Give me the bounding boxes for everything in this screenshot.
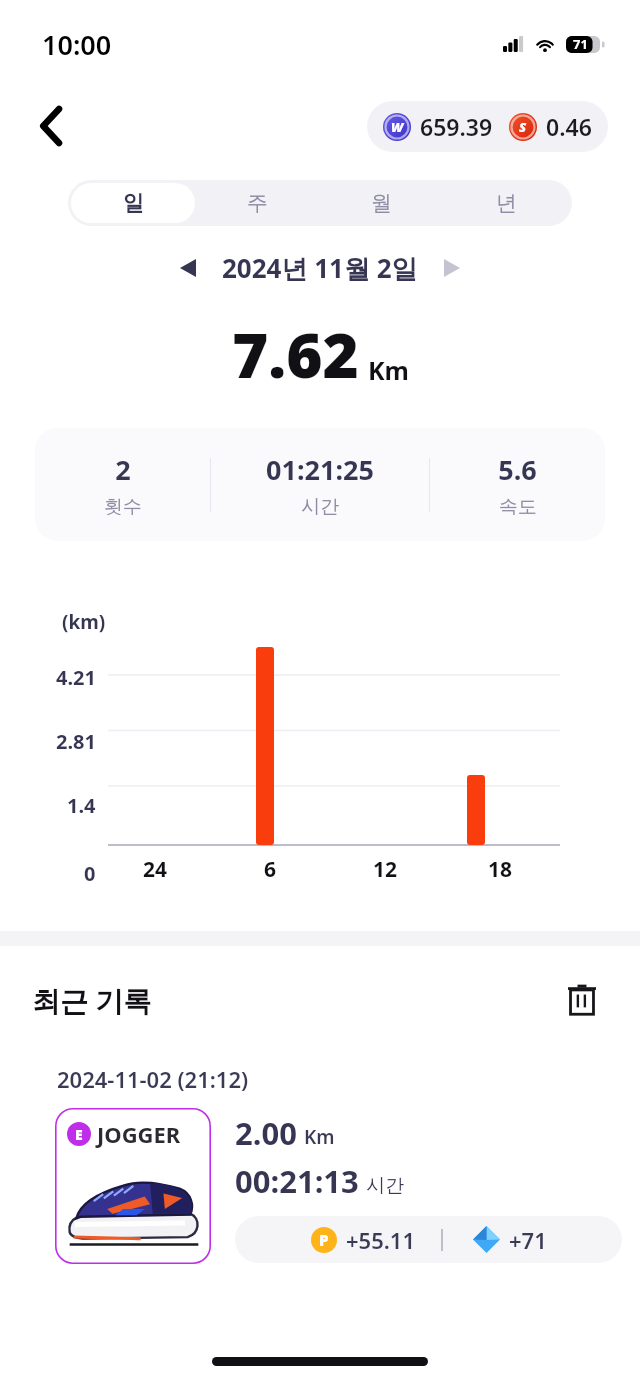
staticText: 일 — [123, 190, 144, 216]
staticText: Km — [304, 1124, 335, 1150]
staticText: 2 — [115, 451, 131, 488]
button[interactable]: 년 — [444, 183, 569, 223]
staticText: 4.21 — [56, 664, 96, 691]
staticText: 2024-11-02 (21:12) — [57, 1064, 249, 1094]
staticText: 01:21:25 — [266, 451, 374, 488]
staticText: 년 — [496, 190, 517, 216]
staticText: 2.81 — [56, 728, 96, 755]
staticText: 00:21:13 — [235, 1160, 359, 1202]
staticText: +55.11 — [346, 1225, 415, 1255]
staticText: P — [319, 1230, 329, 1250]
button[interactable]: Back — [24, 98, 80, 154]
staticText: +71 — [509, 1225, 547, 1255]
button[interactable]: 주 — [195, 183, 319, 223]
staticText: 1.4 — [67, 792, 96, 819]
staticText: 71 — [573, 35, 588, 53]
button[interactable]: Next day — [430, 246, 474, 290]
staticText: Km — [368, 353, 409, 387]
staticText: 횟수 — [104, 495, 142, 519]
button[interactable]: 월 — [319, 183, 444, 223]
button[interactable]: Delete records — [556, 974, 608, 1026]
staticText: 6 — [264, 855, 277, 883]
staticText: (km) — [62, 609, 106, 635]
staticText: 시간 — [301, 495, 339, 519]
button[interactable]: 2024-11-02 (21:12) — [35, 1048, 640, 1278]
staticText: 7.62 — [232, 312, 359, 396]
staticText: 10:00 — [42, 26, 112, 63]
button[interactable]: 2 — [35, 428, 605, 541]
staticText: 월 — [371, 190, 392, 216]
button[interactable]: W — [367, 101, 608, 152]
staticText: 속도 — [499, 495, 537, 519]
staticText: 주 — [247, 190, 268, 216]
staticText: 시간 — [366, 1174, 404, 1198]
staticText: 최근 기록 — [32, 981, 152, 1019]
staticText: 2.00 — [235, 1112, 297, 1154]
staticText: JOGGER — [97, 1119, 181, 1149]
staticText: 18 — [488, 855, 513, 883]
staticText: S — [519, 118, 527, 136]
staticText: W — [391, 118, 404, 136]
button[interactable]: Previous day — [166, 246, 210, 290]
staticText: 0 — [84, 860, 96, 883]
staticText: 24 — [143, 855, 168, 883]
staticText: E — [75, 1125, 83, 1144]
button[interactable]: P — [235, 1216, 622, 1263]
staticText: 2024년 11월 2일 — [222, 250, 418, 286]
staticText: 5.6 — [498, 451, 537, 488]
staticText: 659.39 — [420, 111, 493, 142]
staticText: 0.46 — [546, 111, 592, 142]
staticText: 12 — [373, 855, 398, 883]
button[interactable]: 일 — [71, 183, 195, 223]
